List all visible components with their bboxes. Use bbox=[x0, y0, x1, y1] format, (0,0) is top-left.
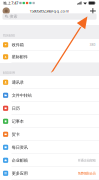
staticText: 我的邮箱 bbox=[3, 33, 15, 37]
button[interactable]: 每日资讯 bbox=[0, 141, 99, 154]
button[interactable]: 文件中转站 bbox=[0, 89, 99, 102]
button[interactable]: Account bbox=[3, 7, 10, 15]
staticText: 1580589234@qq.com bbox=[29, 8, 69, 14]
staticText: 开通企业邮箱 bbox=[78, 158, 96, 162]
staticText: 星标邮件 bbox=[12, 54, 28, 59]
staticText: 收件箱 bbox=[12, 42, 24, 47]
staticText: 日历 bbox=[12, 106, 20, 111]
staticText: 文件中转站 bbox=[12, 93, 32, 98]
button[interactable]: 更多应用 bbox=[0, 167, 99, 180]
button[interactable]: 贺卡 bbox=[0, 128, 99, 141]
button[interactable]: 通讯录 bbox=[0, 76, 99, 89]
staticText: 更多应用 bbox=[12, 171, 28, 176]
staticText: 每日资讯 bbox=[12, 145, 28, 150]
button[interactable]: 记事本 bbox=[0, 115, 99, 128]
staticText: 晚上7:47 bbox=[3, 0, 18, 6]
button[interactable]: 星标邮件 bbox=[0, 51, 99, 63]
button[interactable]: 企业邮箱 bbox=[0, 154, 99, 167]
button[interactable]: 日历 bbox=[0, 102, 99, 115]
button[interactable]: 收件箱 bbox=[0, 39, 99, 51]
staticText: 通讯录 bbox=[12, 80, 24, 85]
staticText: 贺卡 bbox=[12, 132, 20, 137]
staticText: 免费领取会员 bbox=[78, 171, 96, 175]
staticText: 记事本 bbox=[12, 119, 24, 124]
button[interactable]: Compose bbox=[89, 7, 97, 15]
staticText: 企业邮箱 bbox=[12, 158, 28, 163]
staticText: 380 bbox=[90, 42, 96, 47]
staticText: 搜索 bbox=[10, 14, 18, 19]
staticText: 邮箱应用 bbox=[3, 71, 15, 75]
button[interactable]: 搜索 bbox=[2, 13, 97, 20]
